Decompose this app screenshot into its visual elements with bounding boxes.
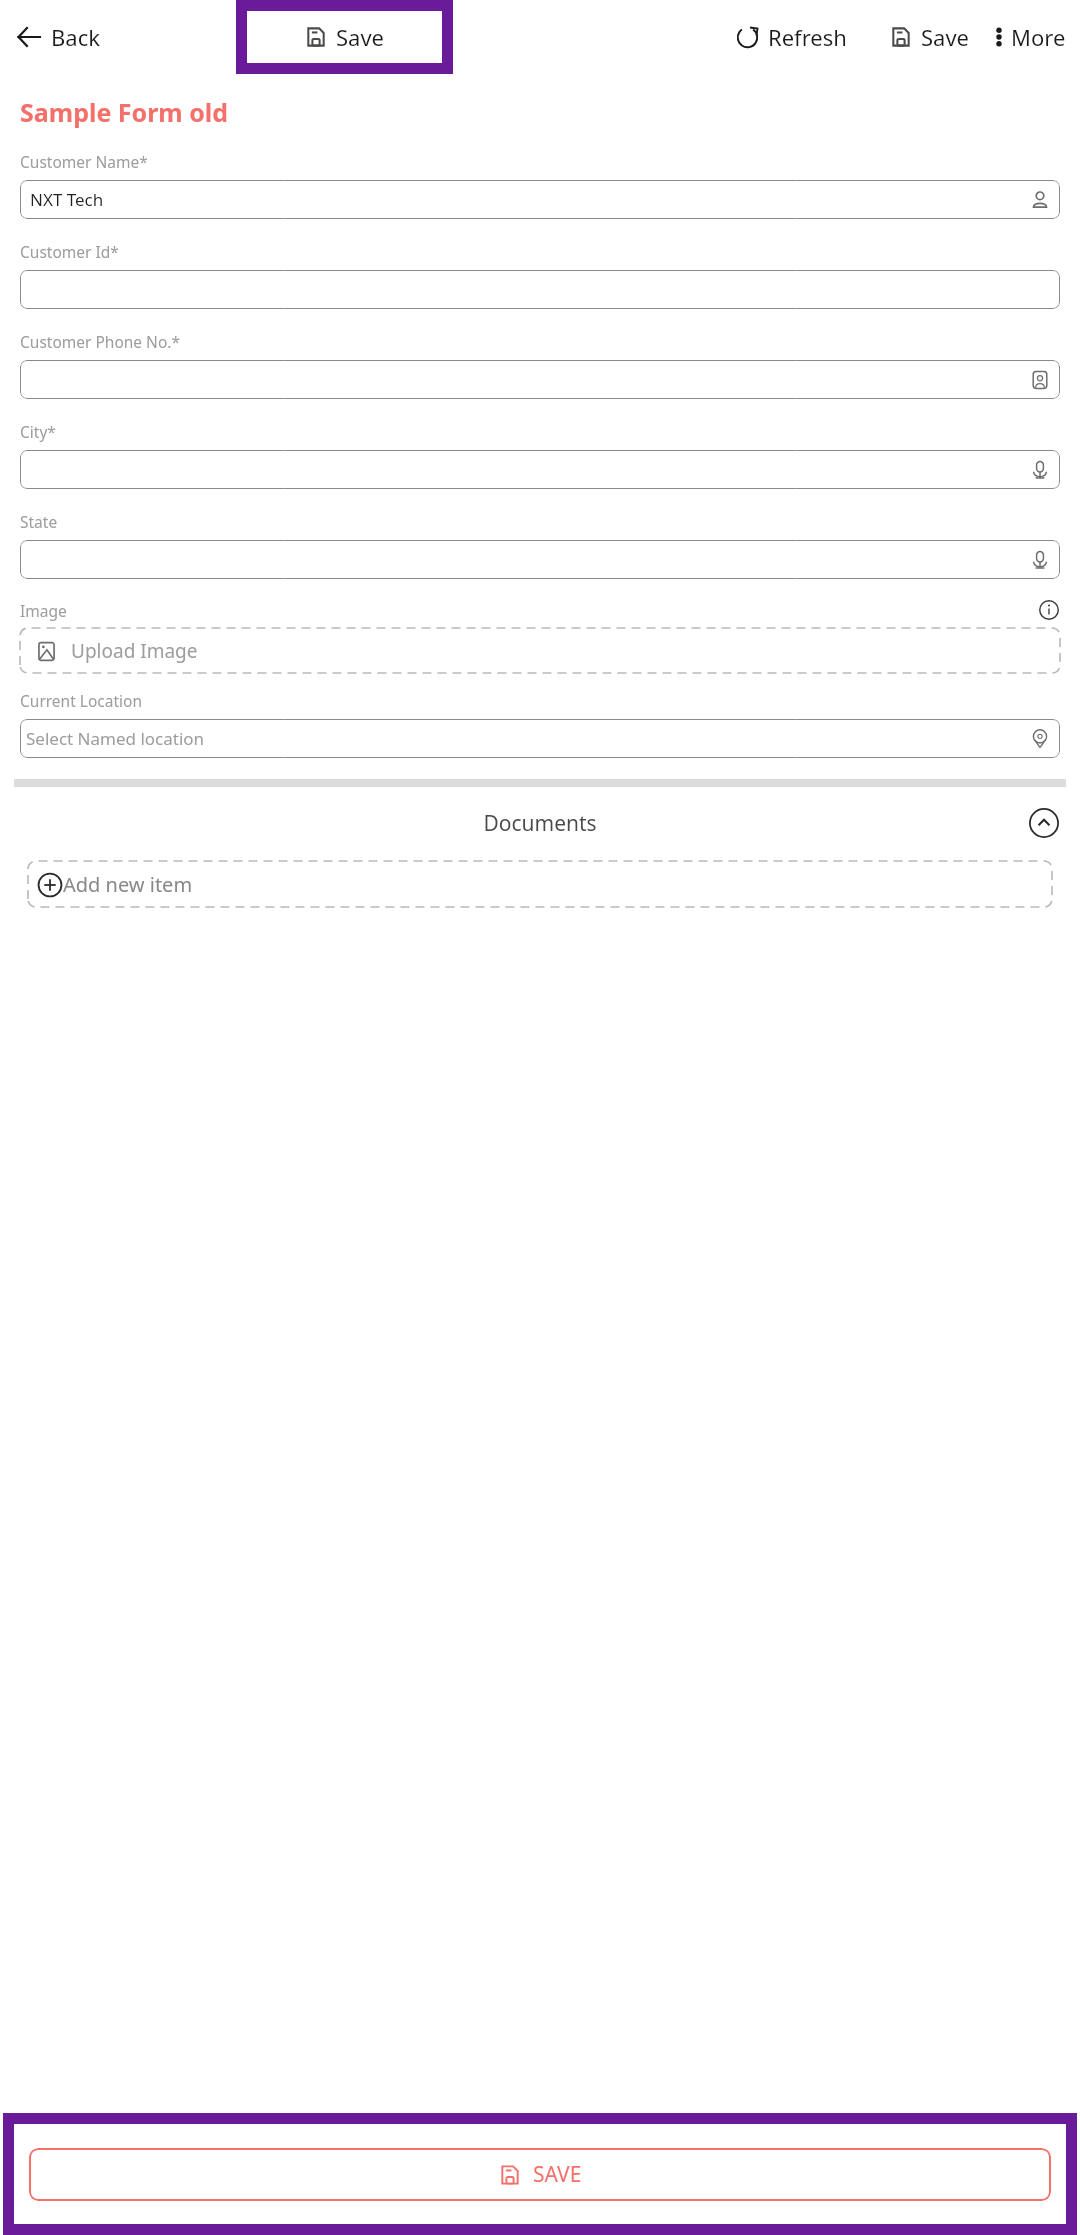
- button[interactable]: More: [990, 16, 1072, 58]
- button[interactable]: Add new item: [28, 861, 1052, 907]
- staticText: Upload Image: [71, 638, 198, 664]
- staticText: Current Location: [20, 690, 143, 711]
- button[interactable]: NXT Tech: [20, 180, 1060, 219]
- other: Use current location: [1030, 729, 1050, 749]
- staticText: Save: [921, 22, 970, 52]
- staticText: SAVE: [533, 2160, 582, 2189]
- button[interactable]: Select Named location: [20, 719, 1060, 758]
- staticText: Back: [51, 22, 100, 52]
- button[interactable]: Save: [247, 11, 442, 63]
- staticText: Sample Form old: [20, 95, 229, 129]
- other: Pick from contacts: [1030, 370, 1050, 390]
- staticText: Add new item: [63, 871, 193, 898]
- staticText: Customer Name*: [20, 151, 148, 172]
- staticText: Image: [20, 600, 67, 621]
- staticText: More: [1011, 22, 1066, 52]
- staticText: City*: [20, 421, 56, 442]
- button[interactable]: Info: [1038, 599, 1060, 621]
- button[interactable]: Pick from contacts: [20, 360, 1060, 399]
- staticText: Customer Id*: [20, 241, 119, 262]
- button[interactable]: [20, 270, 1060, 309]
- staticText: Refresh: [768, 22, 847, 52]
- staticText: Select Named location: [26, 727, 205, 750]
- button[interactable]: Refresh: [729, 16, 853, 58]
- other: Voice input: [1030, 460, 1050, 480]
- button[interactable]: Upload Image: [20, 628, 1060, 673]
- button[interactable]: Collapse Documents: [1028, 807, 1060, 839]
- staticText: Documents: [483, 809, 597, 838]
- button[interactable]: SAVE: [29, 2148, 1051, 2201]
- staticText: NXT Tech: [30, 188, 104, 211]
- button[interactable]: Voice input: [20, 540, 1060, 579]
- other: Voice input: [1030, 550, 1050, 570]
- button[interactable]: Back: [8, 16, 108, 58]
- staticText: Save: [336, 22, 385, 52]
- button[interactable]: Save: [875, 16, 984, 58]
- button[interactable]: Voice input: [20, 450, 1060, 489]
- staticText: State: [20, 511, 58, 532]
- staticText: Customer Phone No.*: [20, 331, 180, 352]
- other: Select contact: [1030, 190, 1050, 210]
